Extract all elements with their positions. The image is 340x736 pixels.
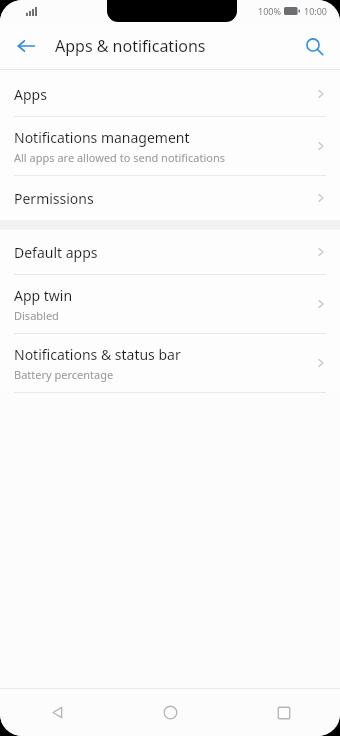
button[interactable]: App twin <box>0 275 340 334</box>
button[interactable]: Back <box>0 689 114 736</box>
button[interactable]: Back <box>6 26 46 66</box>
button[interactable]: Default apps <box>0 230 340 275</box>
staticText: Notifications & status bar <box>14 345 181 364</box>
button[interactable]: Apps <box>0 72 340 117</box>
staticText: Disabled <box>14 308 59 323</box>
staticText: Battery percentage <box>14 367 114 382</box>
button[interactable]: Notifications management <box>0 117 340 176</box>
staticText: Permissions <box>14 189 94 208</box>
button[interactable]: Home <box>114 689 227 736</box>
button[interactable]: Recents <box>227 689 340 736</box>
staticText: Apps & notifications <box>55 35 206 57</box>
button[interactable]: Notifications & status bar <box>0 334 340 393</box>
staticText: Apps <box>14 85 47 104</box>
button[interactable]: Search <box>294 26 334 66</box>
button[interactable]: Permissions <box>0 176 340 220</box>
staticText: App twin <box>14 286 73 305</box>
staticText: 100% <box>258 5 281 17</box>
staticText: 10:00 <box>304 5 328 17</box>
staticText: Default apps <box>14 243 98 262</box>
staticText: Notifications management <box>14 128 190 147</box>
staticText: All apps are allowed to send notificatio… <box>14 150 225 165</box>
